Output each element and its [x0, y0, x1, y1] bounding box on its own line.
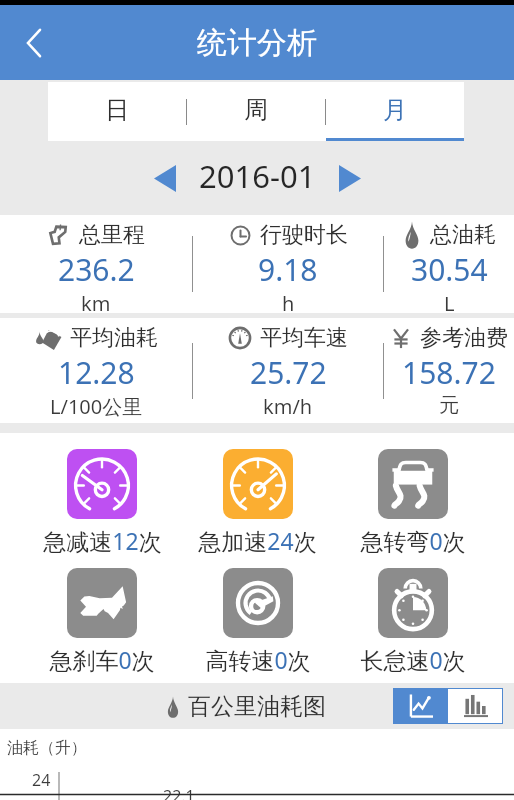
button[interactable]: 高转速0次: [180, 568, 335, 675]
staticText: 总里程: [79, 221, 145, 249]
button[interactable]: 急加速24次: [180, 449, 335, 556]
button[interactable]: Back: [10, 19, 58, 67]
button[interactable]: Bar chart: [448, 688, 503, 724]
button[interactable]: 周: [187, 82, 325, 141]
button[interactable]: 总油耗: [384, 215, 514, 313]
staticText: 急刹车0次: [49, 644, 155, 675]
button[interactable]: Next month: [328, 156, 372, 200]
staticText: 百公里油耗图: [188, 692, 326, 721]
staticText: 25.72: [250, 352, 327, 393]
staticText: 急减速12次: [43, 525, 162, 556]
staticText: 236.2: [58, 249, 135, 290]
staticText: 油耗（升）: [7, 738, 87, 758]
staticText: 2016-01: [199, 155, 316, 197]
staticText: 行驶时长: [260, 221, 348, 249]
staticText: 周: [244, 95, 268, 125]
button[interactable]: 急转弯0次: [335, 449, 490, 556]
button[interactable]: 急刹车0次: [24, 568, 180, 675]
staticText: 急加速24次: [198, 525, 317, 556]
button[interactable]: Previous month: [143, 156, 187, 200]
staticText: 急转弯0次: [360, 525, 466, 556]
staticText: 24: [32, 769, 51, 791]
staticText: km/h: [263, 393, 313, 420]
staticText: 22.1: [163, 785, 195, 800]
staticText: 12.28: [58, 352, 135, 393]
staticText: 平均车速: [260, 324, 348, 352]
staticText: 参考油费: [420, 324, 508, 352]
staticText: 统计分析: [197, 24, 317, 62]
button[interactable]: 日: [48, 82, 186, 141]
button[interactable]: 总里程: [0, 215, 192, 313]
button[interactable]: 平均车速: [193, 318, 383, 423]
staticText: 158.72: [402, 352, 496, 393]
staticText: 9.18: [258, 249, 318, 290]
staticText: h: [282, 290, 295, 313]
button[interactable]: 月: [326, 82, 464, 141]
button[interactable]: 平均油耗: [0, 318, 192, 423]
staticText: 日: [105, 95, 129, 125]
staticText: 总油耗: [430, 221, 496, 249]
staticText: km: [81, 290, 111, 313]
staticText: 30.54: [411, 249, 488, 290]
staticText: L/100公里: [50, 393, 143, 420]
button[interactable]: 急减速12次: [24, 449, 180, 556]
button[interactable]: 参考油费: [384, 318, 514, 423]
staticText: 长怠速0次: [360, 644, 466, 675]
button[interactable]: 长怠速0次: [335, 568, 490, 675]
button[interactable]: Line chart: [393, 688, 448, 724]
staticText: 元: [439, 393, 459, 418]
staticText: 月: [383, 95, 407, 125]
staticText: 平均油耗: [70, 324, 158, 352]
staticText: 高转速0次: [205, 644, 311, 675]
staticText: L: [444, 290, 455, 313]
button[interactable]: 行驶时长: [193, 215, 383, 313]
